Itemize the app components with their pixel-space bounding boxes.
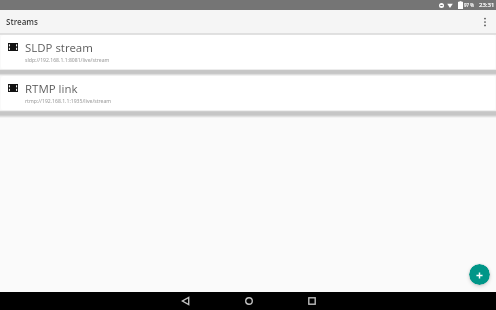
staticText: sldp://192.168.1.1:8081/live/stream xyxy=(25,57,110,64)
staticText: 23:31 xyxy=(479,1,495,9)
button[interactable]: RTMP link xyxy=(1,76,495,110)
button[interactable]: Home xyxy=(226,292,271,310)
button[interactable]: SLDP stream xyxy=(1,35,495,69)
staticText: Streams xyxy=(6,16,38,27)
button[interactable]: Add stream xyxy=(469,264,490,285)
staticText: 97 % xyxy=(464,2,474,8)
button[interactable]: Back xyxy=(163,292,208,310)
staticText: RTMP link xyxy=(25,81,78,97)
button[interactable]: More options xyxy=(474,11,496,33)
button[interactable]: Recents xyxy=(289,292,334,310)
staticText: rtmp://192.168.1.1:1935/live/stream xyxy=(25,98,112,105)
staticText: SLDP stream xyxy=(25,40,93,56)
